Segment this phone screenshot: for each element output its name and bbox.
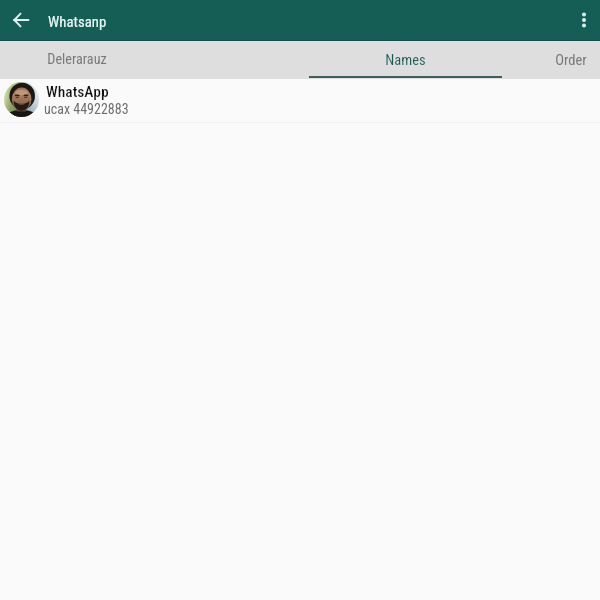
button[interactable]: Back [3, 2, 39, 38]
button[interactable]: Delerarauz [0, 41, 154, 79]
staticText: Order [555, 51, 587, 68]
staticText: Delerarauz [47, 51, 107, 68]
staticText: Whatsanp [48, 13, 107, 30]
button[interactable]: Names [309, 41, 502, 79]
staticText: Names [385, 51, 426, 68]
staticText: ucax 44922883 [44, 101, 129, 117]
button[interactable]: WhatsApp [0, 79, 600, 123]
button[interactable]: More options [566, 2, 600, 38]
button[interactable]: Order [502, 41, 600, 79]
staticText: WhatsApp [46, 83, 109, 101]
